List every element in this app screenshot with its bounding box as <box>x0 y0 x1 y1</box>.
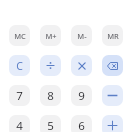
staticText: 7 <box>16 88 23 104</box>
button[interactable]: Minus <box>102 85 123 106</box>
staticText: 6 <box>78 118 85 132</box>
button[interactable]: 9 <box>71 85 92 106</box>
button[interactable]: 7 <box>9 85 30 106</box>
button[interactable]: Divide <box>40 55 61 76</box>
button[interactable]: 8 <box>40 85 61 106</box>
button[interactable]: MC <box>9 25 30 46</box>
button[interactable]: 4 <box>9 115 30 132</box>
staticText: 4 <box>16 118 23 132</box>
staticText: M+ <box>45 31 57 41</box>
staticText: 9 <box>78 88 85 104</box>
button[interactable]: M+ <box>40 25 61 46</box>
staticText: 8 <box>47 88 54 104</box>
staticText: 5 <box>47 118 54 132</box>
staticText: M- <box>77 31 87 41</box>
staticText: MC <box>14 31 26 41</box>
button[interactable]: 5 <box>40 115 61 132</box>
button[interactable]: Plus <box>102 115 123 132</box>
button[interactable]: Backspace <box>102 55 123 76</box>
button[interactable]: MR <box>102 25 123 46</box>
button[interactable]: 6 <box>71 115 92 132</box>
button[interactable]: M- <box>71 25 92 46</box>
staticText: MR <box>107 31 119 41</box>
button[interactable]: Multiply <box>71 55 92 76</box>
button[interactable]: C <box>9 55 30 76</box>
staticText: C <box>16 59 23 73</box>
